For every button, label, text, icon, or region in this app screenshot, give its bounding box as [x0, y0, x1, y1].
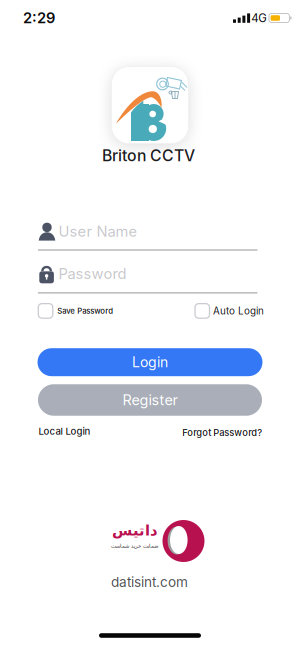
staticText: Local Login — [38, 425, 90, 437]
button[interactable]: Forgot Password? — [122, 425, 262, 441]
button[interactable]: Save Password — [38, 302, 158, 320]
staticText: Forgot Password? — [182, 427, 262, 438]
staticText: Login — [132, 354, 168, 371]
staticText: datisint.com — [111, 574, 188, 590]
button[interactable]: Auto Login — [195, 302, 300, 320]
button[interactable]: Register — [38, 384, 262, 416]
button[interactable]: Login — [37, 348, 262, 376]
staticText: 4G — [251, 11, 267, 25]
button[interactable]: Local Login — [38, 423, 158, 439]
staticText: Save Password — [57, 306, 113, 316]
staticText: داتيس — [111, 522, 157, 539]
staticText: ضمانت خرید شماست — [110, 543, 158, 549]
staticText: Password — [58, 265, 126, 282]
staticText: User Name — [58, 222, 137, 240]
staticText: Briton CCTV — [102, 146, 195, 165]
staticText: Register — [122, 391, 177, 409]
staticText: Auto Login — [213, 305, 264, 317]
staticText: 2:29 — [23, 9, 55, 27]
